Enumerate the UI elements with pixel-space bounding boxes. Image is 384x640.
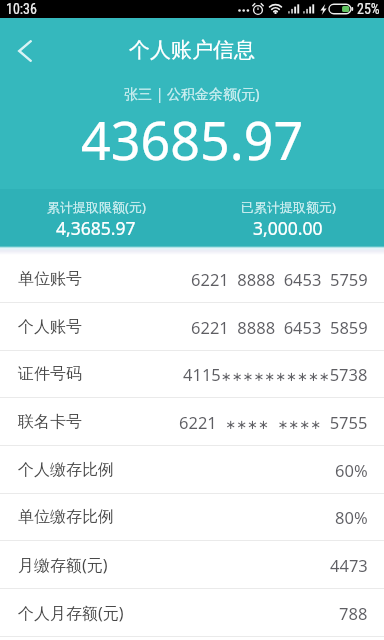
- button[interactable]: 个人月存额(元): [0, 589, 384, 636]
- staticText: 张三 | 公积金余额(元): [124, 84, 260, 103]
- staticText: 月缴存额(元): [18, 554, 108, 576]
- staticText: 联名卡号: [18, 412, 82, 432]
- button[interactable]: 已累计提取额元): [192, 189, 384, 240]
- staticText: 80%: [335, 506, 368, 528]
- staticText: 个人账号: [18, 317, 82, 337]
- button[interactable]: Back: [0, 26, 49, 75]
- staticText: 个人月存额(元): [18, 602, 124, 624]
- staticText: 个人账户信息: [129, 37, 255, 63]
- staticText: 6221 8888 6453 5859: [191, 316, 368, 338]
- button[interactable]: 累计提取限额(元): [0, 189, 192, 240]
- staticText: 788: [339, 602, 368, 624]
- staticText: 个人缴存比例: [18, 460, 114, 480]
- staticText: 10:36: [6, 1, 37, 17]
- staticText: 证件号码: [18, 364, 82, 384]
- button[interactable]: 联名卡号: [0, 398, 384, 445]
- button[interactable]: 个人账号: [0, 303, 384, 350]
- staticText: 累计提取限额(元): [47, 198, 146, 216]
- staticText: 已累计提取额元): [241, 198, 336, 216]
- button[interactable]: 证件号码: [0, 351, 384, 397]
- staticText: 4115∗∗∗∗∗∗∗∗∗∗5738: [183, 363, 368, 385]
- staticText: 60%: [335, 459, 368, 481]
- staticText: 3,000.00: [253, 216, 323, 240]
- staticText: 25%: [357, 1, 380, 17]
- button[interactable]: 个人缴存比例: [0, 446, 384, 493]
- staticText: 6221 ∗∗∗∗ ∗∗∗∗ 5755: [179, 411, 368, 433]
- staticText: 单位缴存比例: [18, 507, 114, 527]
- staticText: 6221 8888 6453 5759: [191, 268, 368, 290]
- button[interactable]: 单位账号: [0, 255, 384, 302]
- staticText: 43685.97: [81, 104, 304, 175]
- staticText: 4473: [330, 554, 368, 576]
- button[interactable]: 单位缴存比例: [0, 494, 384, 540]
- staticText: 4,3685.97: [56, 216, 136, 240]
- button[interactable]: 月缴存额(元): [0, 541, 384, 588]
- staticText: 单位账号: [18, 269, 82, 289]
